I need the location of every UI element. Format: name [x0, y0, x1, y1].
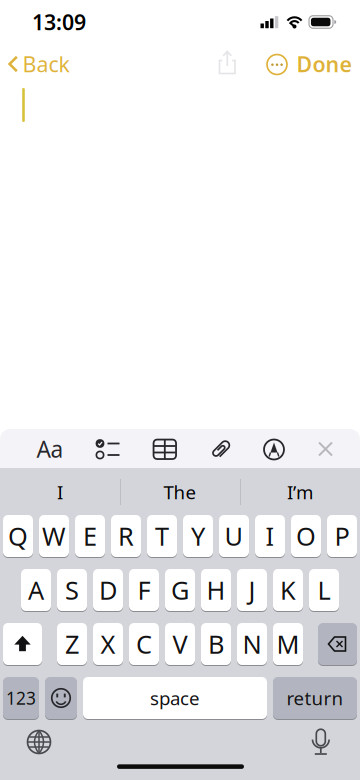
button[interactable]: Y	[183, 515, 213, 557]
button[interactable]: G	[165, 569, 195, 611]
staticText: return	[286, 686, 343, 710]
staticText: Q	[8, 519, 28, 553]
button[interactable]: O	[291, 515, 321, 557]
button[interactable]: J	[237, 569, 267, 611]
button[interactable]: U	[219, 515, 249, 557]
button[interactable]: T	[147, 515, 177, 557]
staticText: The	[163, 480, 196, 504]
staticText: T	[155, 519, 169, 553]
staticText: V	[172, 627, 187, 661]
button[interactable]: V	[165, 623, 195, 665]
button[interactable]: C	[129, 623, 159, 665]
staticText: N	[242, 627, 261, 661]
staticText: E	[83, 519, 97, 553]
staticText: 13:09	[32, 8, 86, 36]
button[interactable]	[45, 677, 77, 719]
button[interactable]: H	[201, 569, 231, 611]
staticText: W	[42, 519, 66, 553]
staticText: I	[265, 519, 274, 553]
staticText: space	[150, 686, 200, 710]
staticText: I’m	[287, 480, 313, 504]
button[interactable]: I’m	[242, 471, 358, 513]
button[interactable]: I	[255, 515, 285, 557]
button[interactable]	[209, 41, 245, 85]
button[interactable]: S	[57, 569, 87, 611]
staticText: C	[136, 627, 152, 661]
staticText: O	[296, 519, 316, 553]
staticText: 123	[6, 686, 36, 709]
staticText: L	[317, 573, 330, 607]
button[interactable]: Q	[3, 515, 33, 557]
staticText: I	[57, 480, 63, 504]
staticText: Aa	[36, 434, 63, 464]
button[interactable]: space	[83, 677, 267, 719]
button[interactable]: D	[93, 569, 123, 611]
button[interactable]: Aa	[28, 429, 72, 469]
button[interactable]: B	[201, 623, 231, 665]
button[interactable]: return	[273, 677, 357, 719]
staticText: H	[206, 573, 225, 607]
button[interactable]: K	[273, 569, 303, 611]
button[interactable]	[17, 720, 61, 764]
button[interactable]: R	[111, 515, 141, 557]
button[interactable]	[199, 429, 243, 469]
staticText: Y	[191, 519, 205, 553]
staticText: P	[334, 519, 349, 553]
staticText: F	[137, 573, 150, 607]
button[interactable]	[303, 429, 347, 469]
button[interactable]	[143, 429, 187, 469]
staticText: A	[28, 573, 44, 607]
button[interactable]	[3, 623, 42, 665]
button[interactable]	[86, 429, 130, 469]
button[interactable]: L	[309, 569, 339, 611]
button[interactable]	[299, 720, 343, 764]
button[interactable]: 123	[3, 677, 39, 719]
staticText: B	[208, 627, 224, 661]
staticText: U	[224, 519, 243, 553]
staticText: G	[171, 573, 189, 607]
staticText: D	[99, 573, 117, 607]
staticText: K	[280, 573, 296, 607]
staticText: Back	[22, 50, 69, 78]
button[interactable]: M	[273, 623, 303, 665]
staticText: Z	[65, 627, 79, 661]
staticText: R	[118, 519, 134, 553]
staticText: X	[100, 627, 115, 661]
button[interactable]: Back	[0, 42, 70, 86]
button[interactable]: The	[122, 471, 238, 513]
staticText: S	[65, 573, 79, 607]
button[interactable]: E	[75, 515, 105, 557]
button[interactable]: I	[2, 471, 118, 513]
button[interactable]: Done	[293, 42, 355, 86]
button[interactable]: Z	[57, 623, 87, 665]
staticText: J	[248, 573, 255, 607]
button[interactable]: A	[21, 569, 51, 611]
button[interactable]: N	[237, 623, 267, 665]
button[interactable]	[261, 42, 293, 86]
button[interactable]	[252, 429, 296, 469]
button[interactable]: F	[129, 569, 159, 611]
button[interactable]: P	[327, 515, 357, 557]
button[interactable]: X	[93, 623, 123, 665]
button[interactable]	[318, 623, 357, 665]
button[interactable]: W	[39, 515, 69, 557]
staticText: M	[276, 627, 299, 661]
staticText: Done	[296, 50, 351, 78]
